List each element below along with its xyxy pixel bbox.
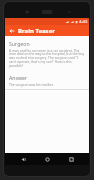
button[interactable]: Back bbox=[17, 153, 29, 165]
staticText: The surgeon was his mother. bbox=[9, 82, 54, 86]
staticText: Surgeon bbox=[9, 40, 30, 47]
staticText: 4:43 bbox=[79, 19, 88, 25]
staticText: Answer bbox=[9, 74, 28, 81]
button[interactable]: Navigate up bbox=[7, 26, 16, 35]
button[interactable]: Home bbox=[41, 153, 53, 165]
staticText: Brain Teaser bbox=[18, 27, 55, 35]
staticText: A man and his son were in a car accident… bbox=[9, 48, 85, 68]
button[interactable]: Recent apps bbox=[65, 153, 77, 165]
